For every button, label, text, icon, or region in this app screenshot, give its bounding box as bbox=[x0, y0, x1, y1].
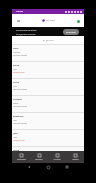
button[interactable]: UP TO DATE bbox=[63, 29, 79, 35]
button[interactable]: My Team bbox=[42, 19, 55, 22]
staticText: UP TO DATE bbox=[66, 31, 76, 33]
button[interactable]: Back bbox=[27, 165, 31, 169]
button[interactable]: Sync status bbox=[75, 18, 81, 24]
staticText: on 01 Jan 2021 07:57 PM bbox=[16, 33, 36, 35]
staticText: Reports bbox=[72, 158, 79, 160]
staticText: Dashboard bbox=[17, 158, 26, 160]
staticText: Clark bbox=[13, 47, 19, 50]
staticText: Many jobs available bbox=[13, 122, 27, 124]
staticText: Officer bbox=[13, 102, 19, 104]
button[interactable]: Menu bbox=[14, 17, 22, 25]
staticText: Chloe bbox=[13, 81, 20, 84]
staticText: Manager bbox=[13, 51, 21, 53]
staticText: Stephen bbox=[13, 98, 22, 101]
staticText: 01 Jan 2021 bbox=[43, 39, 54, 42]
button[interactable]: My Team bbox=[48, 151, 66, 163]
button[interactable]: John bbox=[12, 129, 84, 146]
staticText: My Team bbox=[53, 158, 61, 160]
button[interactable]: Home bbox=[46, 165, 50, 169]
staticText: Staff bbox=[13, 119, 17, 121]
staticText: John bbox=[13, 132, 18, 135]
staticText: Pending transfer bbox=[13, 139, 25, 141]
button[interactable]: Sarah bbox=[12, 61, 84, 78]
staticText: Many jobs available bbox=[13, 105, 27, 107]
staticText: Benjamin bbox=[13, 115, 24, 118]
staticText: Many jobs available bbox=[13, 54, 27, 56]
staticText: Sarah bbox=[13, 64, 20, 67]
staticText: Directory bbox=[35, 158, 43, 160]
button[interactable]: Clark bbox=[12, 44, 84, 61]
button[interactable]: Chloe bbox=[12, 78, 84, 95]
staticText: My Team bbox=[46, 19, 55, 22]
button[interactable]: Recents bbox=[65, 165, 69, 169]
button[interactable]: Benjamin bbox=[12, 112, 84, 129]
staticText: Staff bbox=[13, 136, 17, 138]
staticText: David bbox=[13, 149, 20, 152]
button[interactable]: Directory bbox=[30, 151, 48, 163]
staticText: Many jobs available bbox=[13, 156, 27, 158]
staticText: Staff bbox=[13, 68, 17, 70]
staticText: Your data was last synced bbox=[16, 29, 37, 31]
staticText: 7:57pm bbox=[16, 10, 24, 13]
staticText: Staff bbox=[13, 85, 17, 87]
staticText: Manager bbox=[13, 153, 21, 155]
button[interactable]: Reports bbox=[66, 151, 84, 163]
staticText: Many jobs available bbox=[13, 88, 27, 90]
button[interactable]: Dashboard bbox=[12, 151, 30, 163]
staticText: Pending transfer bbox=[13, 71, 25, 73]
button[interactable]: David bbox=[12, 146, 84, 163]
button[interactable]: Stephen bbox=[12, 95, 84, 112]
